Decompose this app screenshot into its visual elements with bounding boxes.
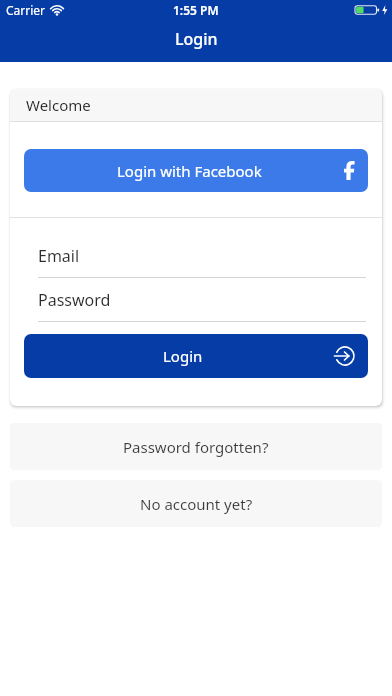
staticText: Login bbox=[163, 346, 203, 366]
button[interactable]: Login bbox=[24, 334, 368, 378]
staticText: 1:55 PM bbox=[173, 2, 219, 18]
staticText: Carrier bbox=[6, 2, 46, 18]
staticText: Email bbox=[38, 245, 80, 267]
button[interactable]: Password forgotten? bbox=[10, 423, 382, 470]
staticText: Login bbox=[175, 28, 218, 50]
staticText: Password bbox=[38, 289, 111, 311]
staticText: Login with Facebook bbox=[117, 161, 262, 181]
button[interactable]: Email bbox=[38, 234, 382, 278]
button[interactable]: Login with Facebook bbox=[24, 149, 368, 192]
staticText: No account yet? bbox=[140, 494, 253, 514]
staticText: Password forgotten? bbox=[123, 437, 269, 457]
button[interactable]: Password bbox=[38, 278, 382, 322]
button[interactable]: No account yet? bbox=[10, 480, 382, 527]
staticText: Welcome bbox=[26, 95, 91, 115]
